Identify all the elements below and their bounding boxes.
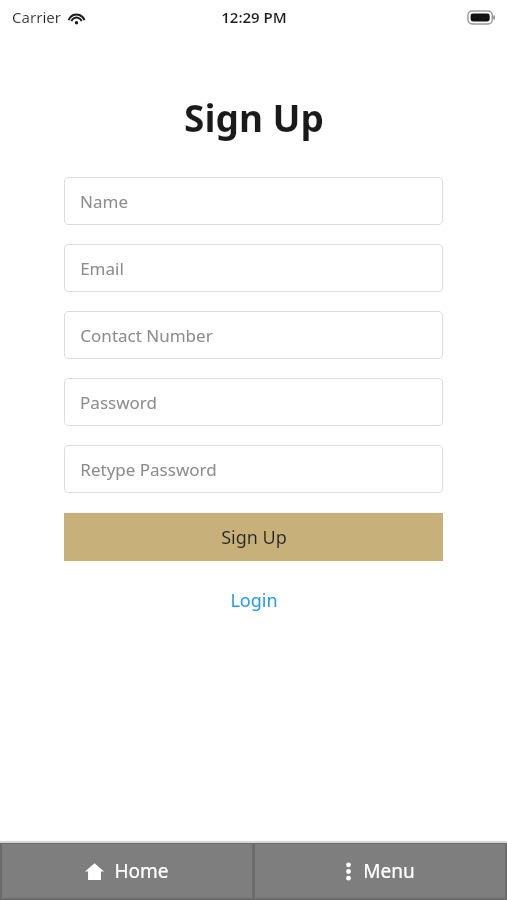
staticText: Carrier xyxy=(12,7,61,27)
other: Menu xyxy=(346,862,351,881)
button[interactable]: Password xyxy=(64,378,443,426)
staticText: Contact Number xyxy=(80,324,213,347)
staticText: Name xyxy=(80,190,128,213)
staticText: Password xyxy=(80,391,157,414)
staticText: Sign Up xyxy=(184,92,324,142)
button[interactable]: Email xyxy=(64,244,443,292)
button[interactable]: Sign Up xyxy=(64,513,443,561)
button[interactable]: Menu xyxy=(255,844,505,898)
staticText: 12:29 PM xyxy=(221,7,287,27)
button[interactable]: Home xyxy=(2,844,252,898)
staticText: Login xyxy=(230,588,278,613)
button[interactable]: Name xyxy=(64,177,443,225)
button[interactable]: Retype Password xyxy=(64,445,443,493)
button[interactable]: Contact Number xyxy=(64,311,443,359)
button[interactable]: Login xyxy=(216,583,292,618)
staticText: Home xyxy=(114,858,169,884)
staticText: Retype Password xyxy=(80,458,217,481)
staticText: Menu xyxy=(363,858,415,884)
staticText: Sign Up xyxy=(221,525,287,550)
staticText: Email xyxy=(80,257,124,280)
other: Home xyxy=(85,862,104,881)
